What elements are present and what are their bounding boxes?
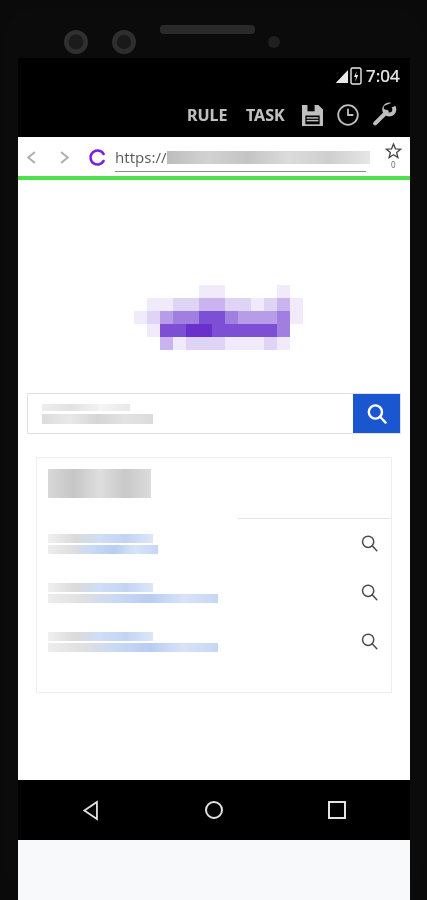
button[interactable] (36, 519, 392, 568)
staticText: 7:04 (366, 64, 400, 87)
button[interactable]: Bookmark (376, 137, 410, 176)
button[interactable] (36, 568, 392, 617)
button[interactable]: Search (353, 393, 401, 434)
button[interactable] (27, 393, 353, 434)
staticText: TASK (246, 104, 285, 126)
button[interactable]: Home (191, 787, 237, 833)
button[interactable]: TASK (237, 98, 294, 132)
button[interactable]: Save (294, 97, 330, 133)
button[interactable]: RULE (178, 98, 237, 132)
button[interactable]: Clock (330, 97, 366, 133)
button[interactable]: https:// (115, 137, 376, 176)
button[interactable] (36, 617, 392, 666)
button[interactable]: Recents (314, 787, 360, 833)
button[interactable]: Back (68, 787, 114, 833)
button[interactable]: Forward (51, 144, 77, 170)
staticText: RULE (187, 104, 228, 126)
button[interactable]: Settings (366, 97, 402, 133)
button[interactable]: Back (18, 144, 44, 170)
button[interactable]: Stop loading (85, 145, 109, 169)
staticText: 0 (391, 159, 396, 170)
staticText: https:// (115, 147, 167, 167)
